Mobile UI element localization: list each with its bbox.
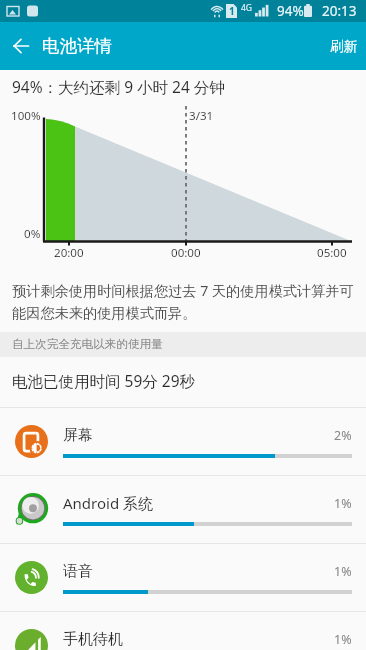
staticText: 1%: [334, 631, 352, 648]
staticText: 0%: [24, 226, 41, 242]
staticText: 20:00: [54, 245, 84, 261]
staticText: 1: [229, 4, 235, 18]
staticText: 屏幕: [63, 426, 93, 445]
button[interactable]: Android 系统: [0, 476, 366, 543]
staticText: 刷新: [330, 38, 357, 55]
staticText: 1%: [334, 495, 352, 512]
staticText: 2%: [334, 427, 352, 444]
staticText: 4G: [241, 2, 253, 14]
button[interactable]: Back: [0, 22, 42, 70]
staticText: 94%: [277, 2, 304, 20]
staticText: 自上次完全充电以来的使用量: [12, 337, 163, 352]
button[interactable]: 手机待机: [0, 612, 366, 650]
button[interactable]: 屏幕: [0, 408, 366, 475]
staticText: 05:00: [317, 245, 347, 261]
staticText: 20:13: [322, 2, 357, 20]
staticText: 3/31: [189, 108, 214, 124]
staticText: 00:00: [171, 245, 201, 261]
button[interactable]: 刷新: [316, 22, 366, 70]
staticText: 94%：大约还剩 9 小时 24 分钟: [12, 76, 225, 97]
staticText: 100%: [11, 108, 41, 124]
staticText: Android 系统: [63, 493, 154, 513]
button[interactable]: 语音: [0, 544, 366, 611]
staticText: 1%: [334, 563, 352, 580]
staticText: 语音: [63, 562, 93, 581]
staticText: 预计剩余使用时间根据您过去 7 天的使用模式计算并可能因您未来的使用模式而异。: [12, 281, 360, 323]
staticText: 手机待机: [63, 630, 123, 649]
staticText: 电池已使用时间 59分 29秒: [12, 370, 196, 391]
staticText: 电池详情: [42, 35, 112, 57]
